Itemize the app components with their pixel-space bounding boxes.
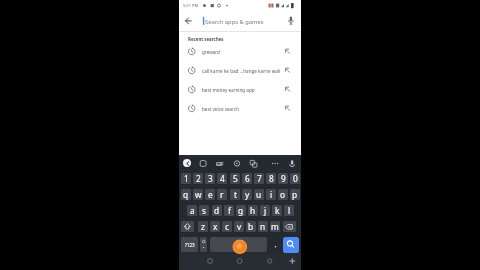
button[interactable]: 6 [242, 173, 252, 184]
staticText: g [238, 205, 244, 216]
button[interactable] [283, 237, 299, 253]
button[interactable] [181, 13, 195, 29]
staticText: t [234, 189, 237, 200]
staticText: p [292, 189, 298, 200]
staticText: 5 [233, 173, 238, 184]
staticText: i [270, 189, 273, 200]
staticText: 1 [184, 173, 189, 184]
staticText: j [264, 205, 267, 216]
button[interactable] [270, 239, 280, 251]
button[interactable]: call karne ke bad ...hange karne wali [179, 61, 301, 80]
staticText: 3 [208, 173, 213, 184]
button[interactable]: x [210, 221, 220, 232]
button[interactable]: ?123 [181, 237, 198, 252]
staticText: x [213, 221, 218, 232]
button[interactable]: best voice search [179, 99, 301, 118]
button[interactable] [181, 221, 194, 232]
button[interactable] [286, 255, 299, 267]
button[interactable] [183, 159, 191, 167]
button[interactable]: d [212, 205, 222, 216]
staticText: best voice search [202, 106, 239, 112]
button[interactable]: 4 [217, 173, 227, 184]
staticText: d [214, 205, 220, 216]
button[interactable]: b [246, 221, 256, 232]
button[interactable]: 1 [181, 173, 191, 184]
staticText: u [256, 189, 262, 200]
button[interactable]: j [260, 205, 270, 216]
button[interactable] [233, 255, 247, 267]
button[interactable]: 3 [205, 173, 215, 184]
button[interactable]: s [199, 205, 209, 216]
button[interactable] [198, 158, 208, 169]
button[interactable]: c [222, 221, 232, 232]
button[interactable]: a [187, 205, 197, 216]
button[interactable]: o [278, 189, 288, 200]
staticText: w [195, 189, 202, 200]
staticText: best money earning app [202, 87, 255, 93]
staticText: c [225, 221, 229, 232]
button[interactable] [213, 158, 225, 169]
button[interactable]: e [205, 189, 215, 200]
staticText: 7 [257, 173, 262, 184]
button[interactable] [231, 158, 243, 169]
staticText: 6 [245, 173, 250, 184]
button[interactable]: u [254, 189, 264, 200]
button[interactable]: 9 [278, 173, 288, 184]
button[interactable]: greward [179, 42, 301, 61]
button[interactable] [210, 237, 267, 252]
staticText: greward [202, 49, 220, 55]
staticText: e [208, 189, 213, 200]
button[interactable]: w [193, 189, 203, 200]
staticText: 2 [196, 173, 201, 184]
button[interactable] [269, 158, 281, 169]
staticText: n [260, 221, 266, 232]
button[interactable]: m [270, 221, 280, 232]
staticText: 9 [281, 173, 286, 184]
button[interactable]: 8 [266, 173, 276, 184]
button[interactable] [283, 221, 296, 232]
staticText: GIF [216, 161, 224, 167]
button[interactable]: q [181, 189, 191, 200]
button[interactable] [200, 237, 207, 252]
staticText: f [228, 205, 231, 216]
button[interactable]: f [224, 205, 234, 216]
staticText: h [250, 205, 256, 216]
button[interactable]: p [290, 189, 300, 200]
button[interactable]: 2 [193, 173, 203, 184]
staticText: l [288, 205, 291, 216]
button[interactable]: best money earning app [179, 80, 301, 99]
staticText: k [275, 205, 280, 216]
staticText: 4 [220, 173, 225, 184]
button[interactable]: z [198, 221, 208, 232]
button[interactable] [247, 158, 259, 169]
staticText: s [202, 205, 206, 216]
button[interactable]: 5 [230, 173, 240, 184]
staticText: o [280, 189, 286, 200]
button[interactable]: n [258, 221, 268, 232]
staticText: y [245, 189, 250, 200]
button[interactable]: h [248, 205, 258, 216]
button[interactable] [286, 158, 298, 169]
button[interactable]: i [266, 189, 276, 200]
staticText: q [183, 189, 189, 200]
button[interactable]: 7 [254, 173, 264, 184]
button[interactable] [203, 255, 217, 267]
button[interactable]: Search apps & games [179, 11, 301, 31]
button[interactable]: l [284, 205, 294, 216]
staticText: call karne ke bad ...hange karne wali [202, 68, 281, 74]
staticText: v [237, 221, 242, 232]
button[interactable] [263, 255, 277, 267]
button[interactable]: v [234, 221, 244, 232]
button[interactable]: t [230, 189, 240, 200]
staticText: Search apps & games [205, 18, 264, 26]
button[interactable] [285, 13, 297, 29]
button[interactable]: y [242, 189, 252, 200]
staticText: z [201, 221, 205, 232]
staticText: b [248, 221, 254, 232]
button[interactable]: 0 [290, 173, 300, 184]
staticText: 8 [269, 173, 274, 184]
button[interactable]: r [217, 189, 227, 200]
staticText: r [220, 189, 224, 200]
button[interactable]: k [272, 205, 282, 216]
button[interactable]: g [236, 205, 246, 216]
